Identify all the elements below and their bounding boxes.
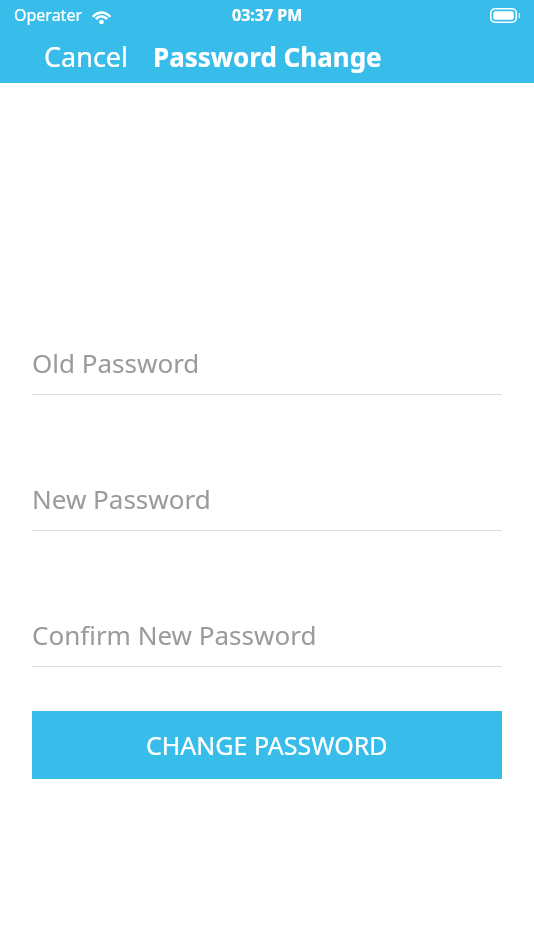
staticText: 03:37 PM <box>232 4 303 26</box>
staticText: New Password <box>32 481 211 516</box>
staticText: Password Change <box>153 39 382 74</box>
staticText: Cancel <box>44 38 129 75</box>
staticText: Operater <box>14 4 83 26</box>
button[interactable]: Cancel <box>0 32 141 81</box>
staticText: Old Password <box>32 345 200 380</box>
button[interactable]: Old Password <box>32 345 502 395</box>
other: Battery <box>490 8 520 23</box>
staticText: Confirm New Password <box>32 617 317 652</box>
button[interactable]: CHANGE PASSWORD <box>32 711 502 779</box>
staticText: CHANGE PASSWORD <box>146 728 388 762</box>
button[interactable]: Confirm New Password <box>32 617 502 667</box>
button[interactable]: New Password <box>32 481 502 531</box>
